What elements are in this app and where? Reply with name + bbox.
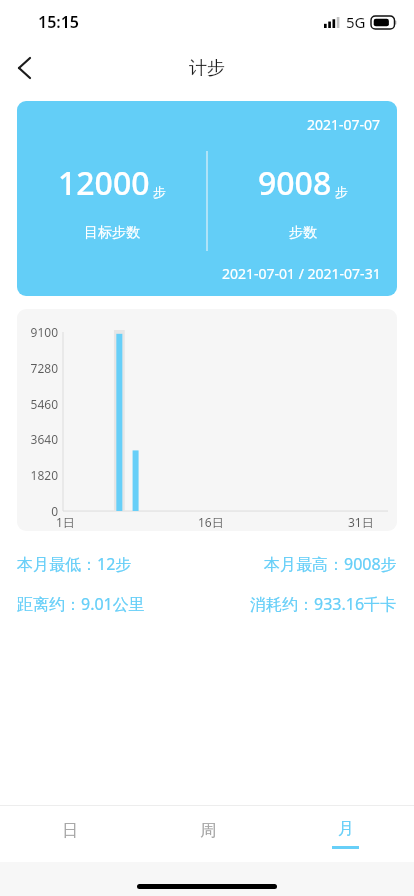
staticText: 15:15 bbox=[38, 11, 80, 33]
staticText: 0 bbox=[17, 503, 58, 519]
staticText: 距离约：9.01公里 bbox=[17, 593, 145, 615]
staticText: 1820 bbox=[17, 467, 58, 483]
staticText: 计步 bbox=[189, 57, 225, 80]
staticText: 目标步数 bbox=[84, 224, 140, 242]
button[interactable]: 日 bbox=[0, 806, 138, 862]
staticText: 本月最高：9008步 bbox=[264, 553, 397, 575]
staticText: 1日 bbox=[56, 514, 75, 530]
staticText: 5G bbox=[346, 12, 366, 32]
staticText: 12000 bbox=[58, 161, 150, 205]
staticText: 日 bbox=[62, 821, 78, 841]
staticText: 9100 bbox=[17, 324, 58, 340]
staticText: 步 bbox=[335, 184, 348, 200]
button[interactable]: 月 bbox=[276, 806, 414, 862]
staticText: 7280 bbox=[17, 360, 58, 376]
staticText: 3640 bbox=[17, 431, 58, 447]
button[interactable]: 周 bbox=[138, 806, 276, 862]
staticText: 2021-07-01 / 2021-07-31 bbox=[222, 264, 381, 283]
staticText: 周 bbox=[200, 821, 216, 841]
button[interactable]: Back bbox=[0, 44, 48, 92]
staticText: 9008 bbox=[258, 161, 332, 205]
staticText: 本月最低：12步 bbox=[17, 553, 132, 575]
button[interactable]: 2021-07-07 bbox=[17, 101, 397, 296]
staticText: 5460 bbox=[17, 396, 58, 412]
staticText: 消耗约：933.16千卡 bbox=[250, 593, 397, 615]
staticText: 步 bbox=[153, 184, 166, 200]
staticText: 步数 bbox=[289, 224, 317, 242]
staticText: 31日 bbox=[348, 514, 374, 530]
staticText: 月 bbox=[338, 819, 354, 839]
staticText: 2021-07-07 bbox=[307, 115, 381, 134]
staticText: 16日 bbox=[198, 514, 224, 530]
